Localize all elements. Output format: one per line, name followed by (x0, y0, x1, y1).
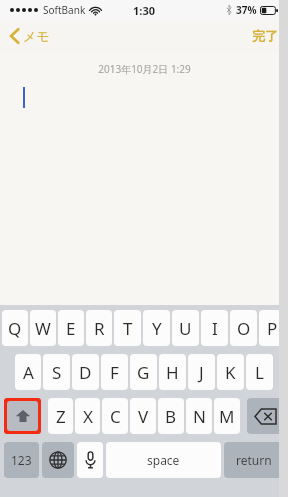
button[interactable]: R (86, 310, 112, 346)
staticText: 2013年10月2日 1:29 (98, 62, 191, 76)
button[interactable]: Backspace (247, 398, 284, 434)
staticText: S (52, 361, 62, 384)
staticText: X (83, 405, 93, 428)
button[interactable]: Q (2, 310, 28, 346)
button[interactable]: L (246, 354, 273, 390)
staticText: P (267, 317, 278, 340)
staticText: B (165, 405, 177, 428)
button[interactable]: N (186, 398, 212, 434)
button[interactable]: return (224, 442, 284, 478)
staticText: Z (56, 405, 66, 428)
staticText: Y (152, 317, 162, 340)
button[interactable]: M (214, 398, 240, 434)
button[interactable]: Switch keyboard language (42, 442, 74, 478)
staticText: 37% (236, 3, 257, 17)
staticText: 1:30 (133, 3, 155, 18)
button[interactable]: I (201, 310, 228, 346)
staticText: E (66, 317, 76, 340)
button[interactable]: F (101, 354, 128, 390)
staticText: V (138, 405, 149, 428)
button[interactable]: W (30, 310, 56, 346)
staticText: U (179, 317, 192, 340)
staticText: G (137, 361, 150, 384)
button[interactable]: Shift (4, 398, 41, 434)
button[interactable]: B (158, 398, 184, 434)
button[interactable]: D (72, 354, 99, 390)
button[interactable]: J (188, 354, 215, 390)
button[interactable]: 123 (4, 442, 39, 478)
button[interactable]: 2013年10月2日 1:29 (0, 51, 288, 305)
button[interactable]: T (114, 310, 141, 346)
button[interactable]: Z (48, 398, 73, 434)
button[interactable]: Y (143, 310, 170, 346)
button[interactable]: メモ (0, 24, 60, 48)
staticText: H (166, 361, 179, 384)
button[interactable]: P (259, 310, 286, 346)
button[interactable]: X (75, 398, 100, 434)
button[interactable]: O (230, 310, 257, 346)
staticText: D (79, 361, 92, 384)
staticText: K (225, 361, 236, 384)
staticText: A (23, 361, 34, 384)
staticText: W (35, 317, 51, 340)
staticText: 完了 (252, 28, 278, 44)
staticText: return (236, 452, 272, 468)
staticText: 123 (11, 452, 32, 468)
button[interactable]: E (58, 310, 84, 346)
button[interactable]: 完了 (242, 24, 288, 48)
staticText: J (199, 361, 204, 384)
staticText: M (219, 405, 235, 428)
staticText: SoftBank (43, 3, 86, 17)
staticText: T (123, 317, 133, 340)
staticText: C (110, 405, 121, 428)
staticText: R (94, 317, 105, 340)
staticText: O (237, 317, 251, 340)
staticText: N (193, 405, 206, 428)
button[interactable]: S (43, 354, 70, 390)
staticText: I (212, 317, 218, 340)
button[interactable]: V (130, 398, 156, 434)
button[interactable]: A (15, 354, 41, 390)
button[interactable]: C (102, 398, 128, 434)
staticText: F (110, 361, 119, 384)
button[interactable]: H (159, 354, 186, 390)
staticText: space (147, 452, 180, 468)
button[interactable]: Dictation (77, 442, 103, 478)
button[interactable]: space (106, 442, 221, 478)
staticText: メモ (23, 28, 50, 44)
button[interactable]: K (217, 354, 244, 390)
staticText: Q (8, 317, 22, 340)
staticText: L (255, 361, 264, 384)
button[interactable]: U (172, 310, 199, 346)
button[interactable]: G (130, 354, 157, 390)
